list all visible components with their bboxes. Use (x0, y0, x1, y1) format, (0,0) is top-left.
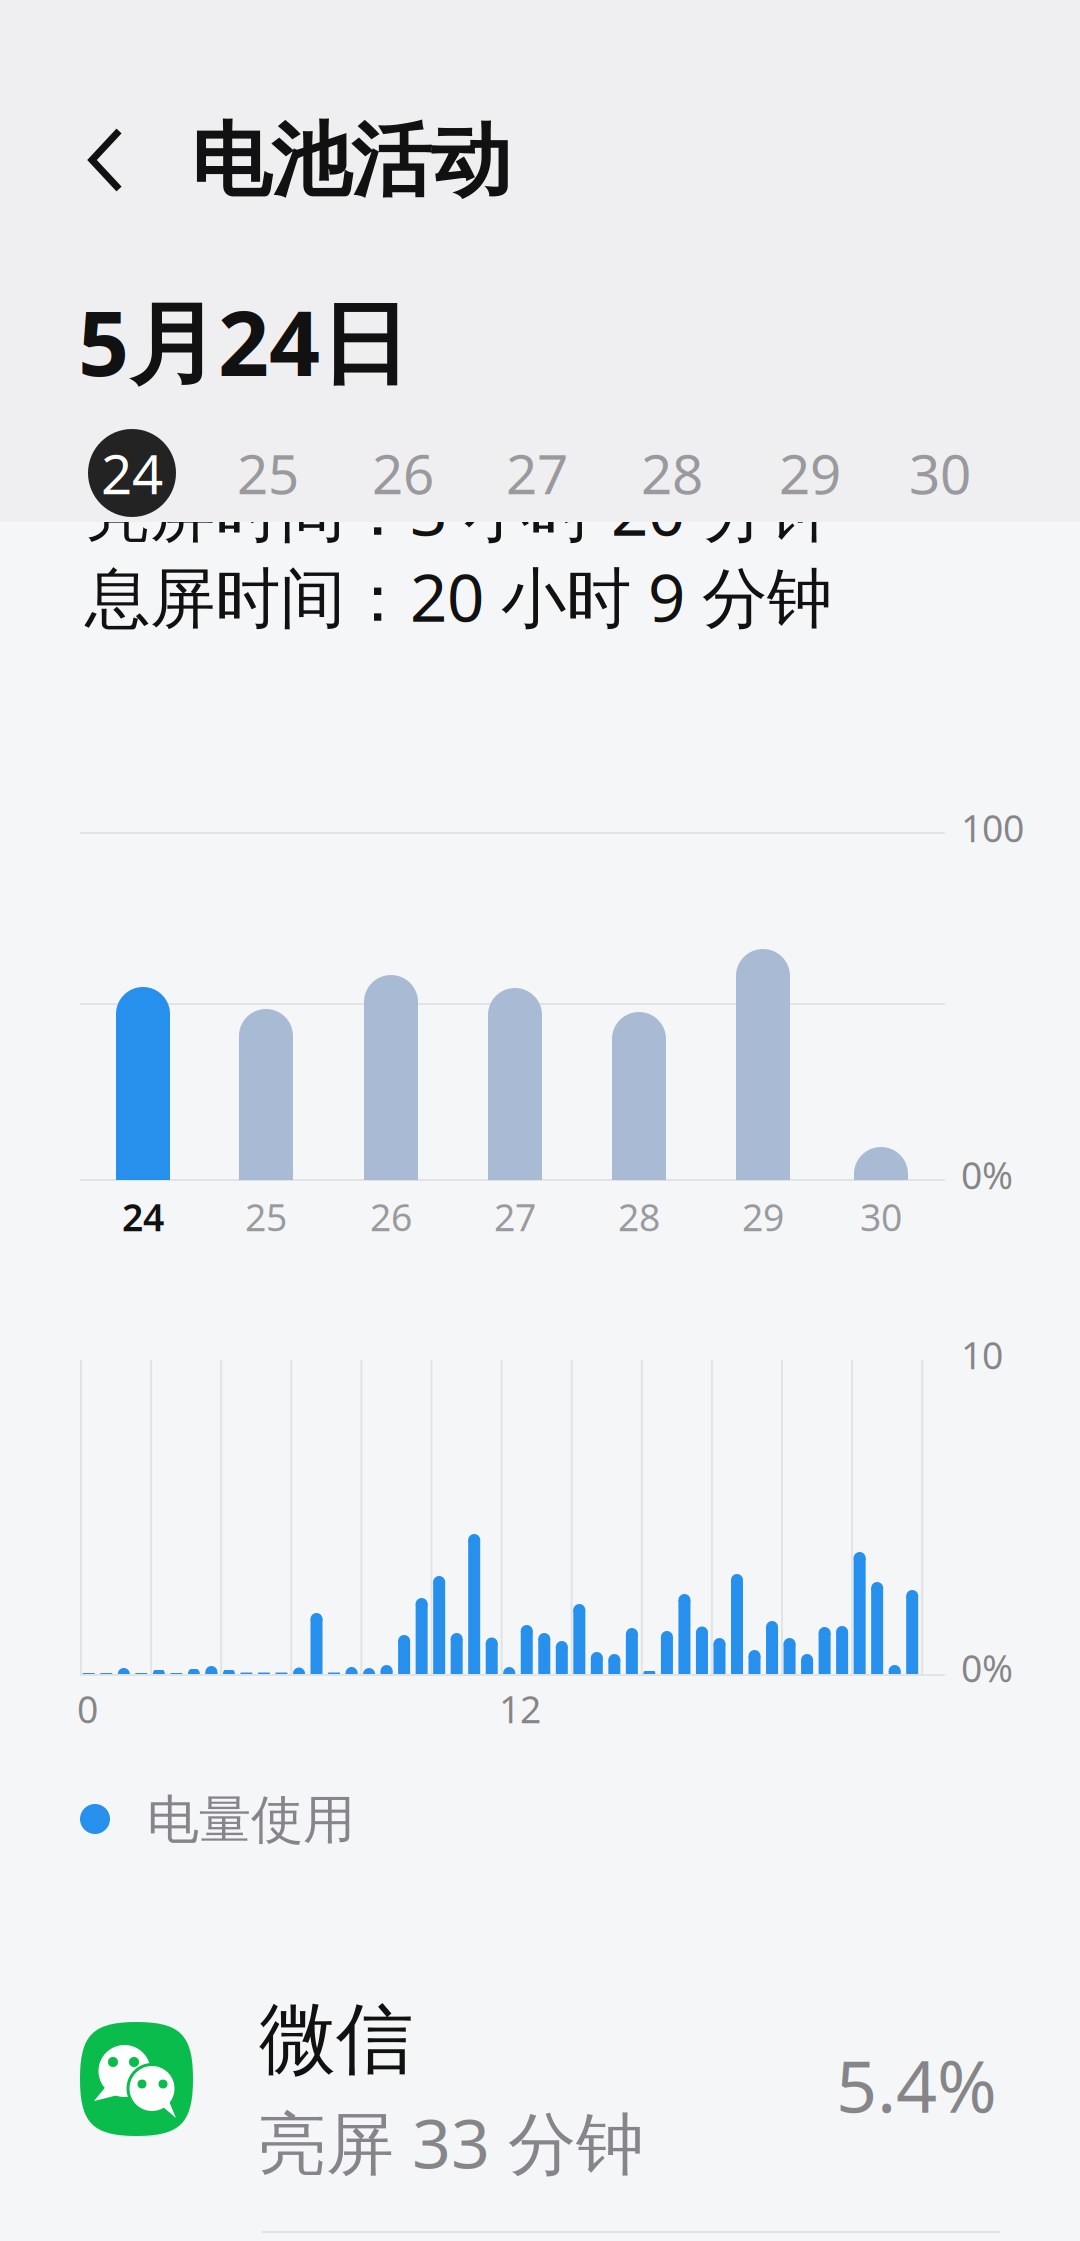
staticText: 26 (372, 437, 434, 509)
button[interactable]: 27 (482, 418, 592, 528)
button[interactable]: 微信 (0, 2000, 1080, 2241)
button[interactable]: 26 (348, 418, 458, 528)
staticText: 30 (860, 1192, 902, 1242)
staticText: 电量使用 (147, 1788, 355, 1852)
staticText: 30 (909, 437, 971, 509)
staticText: 24 (101, 437, 163, 509)
staticText: 100 (961, 803, 1024, 853)
button[interactable]: 28 (617, 418, 727, 528)
staticText: 26 (370, 1192, 412, 1242)
staticText: 28 (618, 1192, 660, 1242)
staticText: 12 (499, 1684, 541, 1734)
button[interactable]: 30 (885, 418, 995, 528)
staticText: 29 (742, 1192, 784, 1242)
button[interactable]: 29 (755, 418, 865, 528)
button[interactable]: 电池活动 (46, 110, 606, 220)
button[interactable]: 25 (213, 418, 323, 528)
staticText: 0 (77, 1684, 98, 1734)
staticText: 微信 (259, 1992, 413, 2087)
staticText: 25 (237, 437, 299, 509)
button[interactable]: 24 (77, 418, 187, 528)
staticText: 29 (779, 437, 841, 509)
staticText: 27 (494, 1192, 536, 1242)
staticText: 息屏时间：20 小时 9 分钟 (85, 553, 832, 640)
staticText: 0% (961, 1150, 1013, 1200)
staticText: 10 (961, 1330, 1003, 1380)
staticText: 5.4% (836, 2037, 997, 2133)
staticText: 27 (506, 437, 568, 509)
staticText: 5月24日 (78, 282, 409, 401)
staticText: 28 (641, 437, 703, 509)
staticText: 0% (961, 1643, 1013, 1693)
staticText: 亮屏 33 分钟 (258, 2097, 644, 2187)
staticText: 24 (122, 1192, 164, 1242)
staticText: 亮屏时间：3 小时 20 分钟 (85, 467, 832, 554)
staticText: 电池活动 (191, 112, 511, 210)
staticText: 25 (245, 1192, 287, 1242)
